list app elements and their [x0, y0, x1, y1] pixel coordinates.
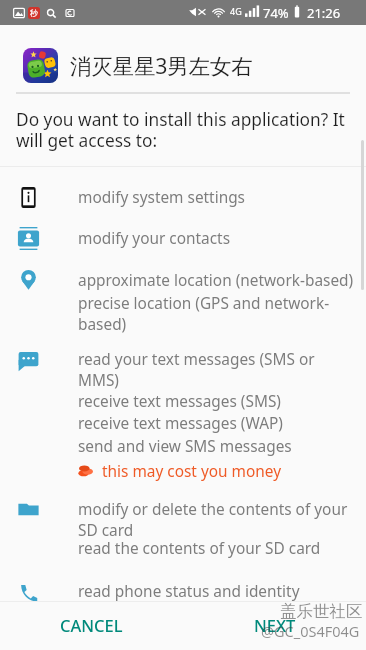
- staticText: modify or delete the contents of your SD…: [78, 499, 356, 540]
- staticText: 消灭星星3男左女右: [70, 51, 253, 80]
- staticText: approximate location (network-based): [78, 270, 356, 291]
- staticText: 4G: [230, 5, 242, 17]
- staticText: @GC_0S4F04G: [261, 621, 360, 641]
- button[interactable]: NEXT: [254, 614, 296, 636]
- staticText: receive text messages (SMS): [78, 391, 356, 412]
- staticText: modify system settings: [78, 187, 356, 208]
- staticText: 74%: [263, 4, 289, 22]
- button[interactable]: CANCEL: [60, 614, 123, 636]
- staticText: CANCEL: [60, 614, 123, 636]
- staticText: this may cost you money: [102, 461, 366, 482]
- staticText: read your text messages (SMS or MMS): [78, 349, 356, 390]
- staticText: 秒: [30, 8, 38, 18]
- staticText: 盖乐世社区: [280, 601, 363, 622]
- staticText: NEXT: [254, 614, 296, 636]
- staticText: receive text messages (WAP): [78, 413, 356, 434]
- staticText: read the contents of your SD card: [78, 538, 356, 559]
- staticText: modify your contacts: [78, 228, 356, 249]
- staticText: read phone status and identity: [78, 581, 356, 602]
- staticText: Do you want to install this application?…: [16, 108, 352, 153]
- staticText: 21:26: [307, 4, 341, 22]
- staticText: send and view SMS messages: [78, 436, 356, 457]
- staticText: precise location (GPS and network-based): [78, 293, 356, 334]
